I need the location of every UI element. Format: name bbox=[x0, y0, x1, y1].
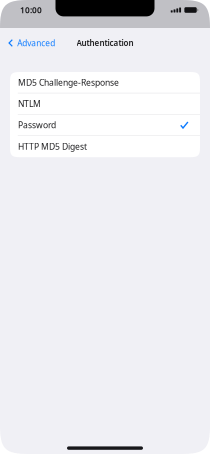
button[interactable]: MD5 Challenge-Response bbox=[10, 72, 200, 93]
staticText: HTTP MD5 Digest bbox=[18, 141, 87, 152]
staticText: NTLM bbox=[18, 98, 41, 109]
button[interactable]: Advanced bbox=[0, 34, 61, 52]
staticText: 10:00 bbox=[20, 4, 42, 16]
button[interactable]: NTLM bbox=[10, 93, 200, 115]
button[interactable]: Password bbox=[10, 115, 200, 136]
button[interactable]: HTTP MD5 Digest bbox=[10, 136, 200, 157]
staticText: Authentication bbox=[76, 38, 133, 48]
staticText: Password bbox=[18, 119, 56, 131]
staticText: Advanced bbox=[17, 37, 55, 49]
staticText: MD5 Challenge-Response bbox=[18, 77, 119, 88]
